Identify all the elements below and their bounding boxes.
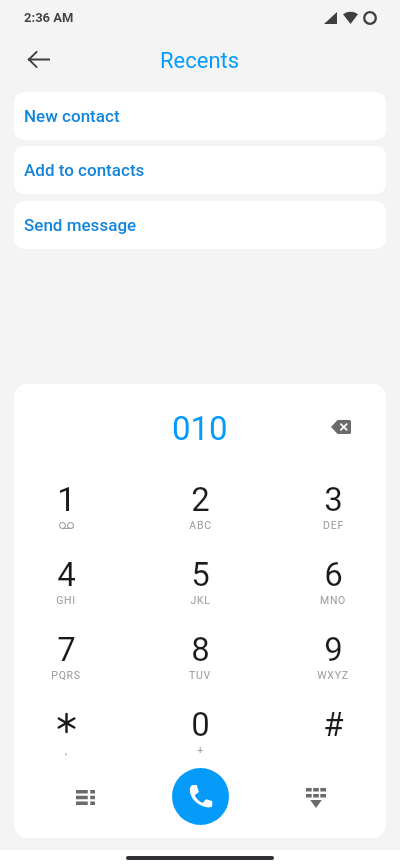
staticText: 4 (57, 555, 76, 594)
staticText: + (197, 744, 204, 756)
button[interactable]: Call (172, 768, 229, 825)
button[interactable]: 2 (156, 480, 244, 555)
button[interactable]: Dialpad options (61, 773, 109, 821)
staticText: , (65, 744, 68, 756)
button[interactable]: Back (19, 39, 59, 79)
staticText: 1 (57, 480, 76, 519)
staticText: DEF (323, 519, 344, 531)
button[interactable]: 7 (22, 630, 110, 705)
button[interactable]: 0 (156, 705, 244, 780)
staticText: 0 (191, 705, 210, 744)
button[interactable]: New contact (14, 92, 386, 140)
button[interactable]: 5 (156, 555, 244, 630)
button[interactable]: 3 (289, 480, 377, 555)
staticText: Add to contacts (24, 160, 145, 180)
staticText: 2 (191, 480, 210, 519)
button[interactable]: Add to contacts (14, 146, 386, 194)
button[interactable]: 9 (289, 630, 377, 705)
button[interactable]: Send message (14, 201, 386, 249)
staticText: MNO (320, 594, 346, 606)
button[interactable]: Backspace (319, 405, 363, 449)
button[interactable]: 6 (289, 555, 377, 630)
button[interactable]: , (22, 705, 110, 780)
button[interactable]: # (289, 705, 377, 780)
staticText: PQRS (51, 669, 81, 681)
staticText: TUV (189, 669, 211, 681)
staticText: 5 (191, 555, 210, 594)
staticText: WXYZ (317, 669, 349, 681)
button[interactable]: Hide keypad (292, 774, 340, 822)
button[interactable]: 4 (22, 555, 110, 630)
staticText: 9 (324, 630, 343, 669)
staticText: ABC (189, 519, 212, 531)
staticText: New contact (24, 106, 120, 126)
staticText: 2:36 AM (24, 10, 74, 25)
staticText: 8 (191, 630, 210, 669)
staticText: 7 (57, 630, 76, 669)
staticText: Recents (160, 48, 240, 74)
button[interactable]: 8 (156, 630, 244, 705)
staticText: 010 (172, 409, 228, 448)
staticText: Send message (24, 215, 137, 235)
staticText: GHI (56, 594, 76, 606)
staticText: # (323, 705, 344, 744)
staticText: 3 (324, 480, 343, 519)
staticText: JKL (190, 594, 211, 606)
staticText: 6 (324, 555, 343, 594)
button[interactable]: 1 (22, 480, 110, 555)
